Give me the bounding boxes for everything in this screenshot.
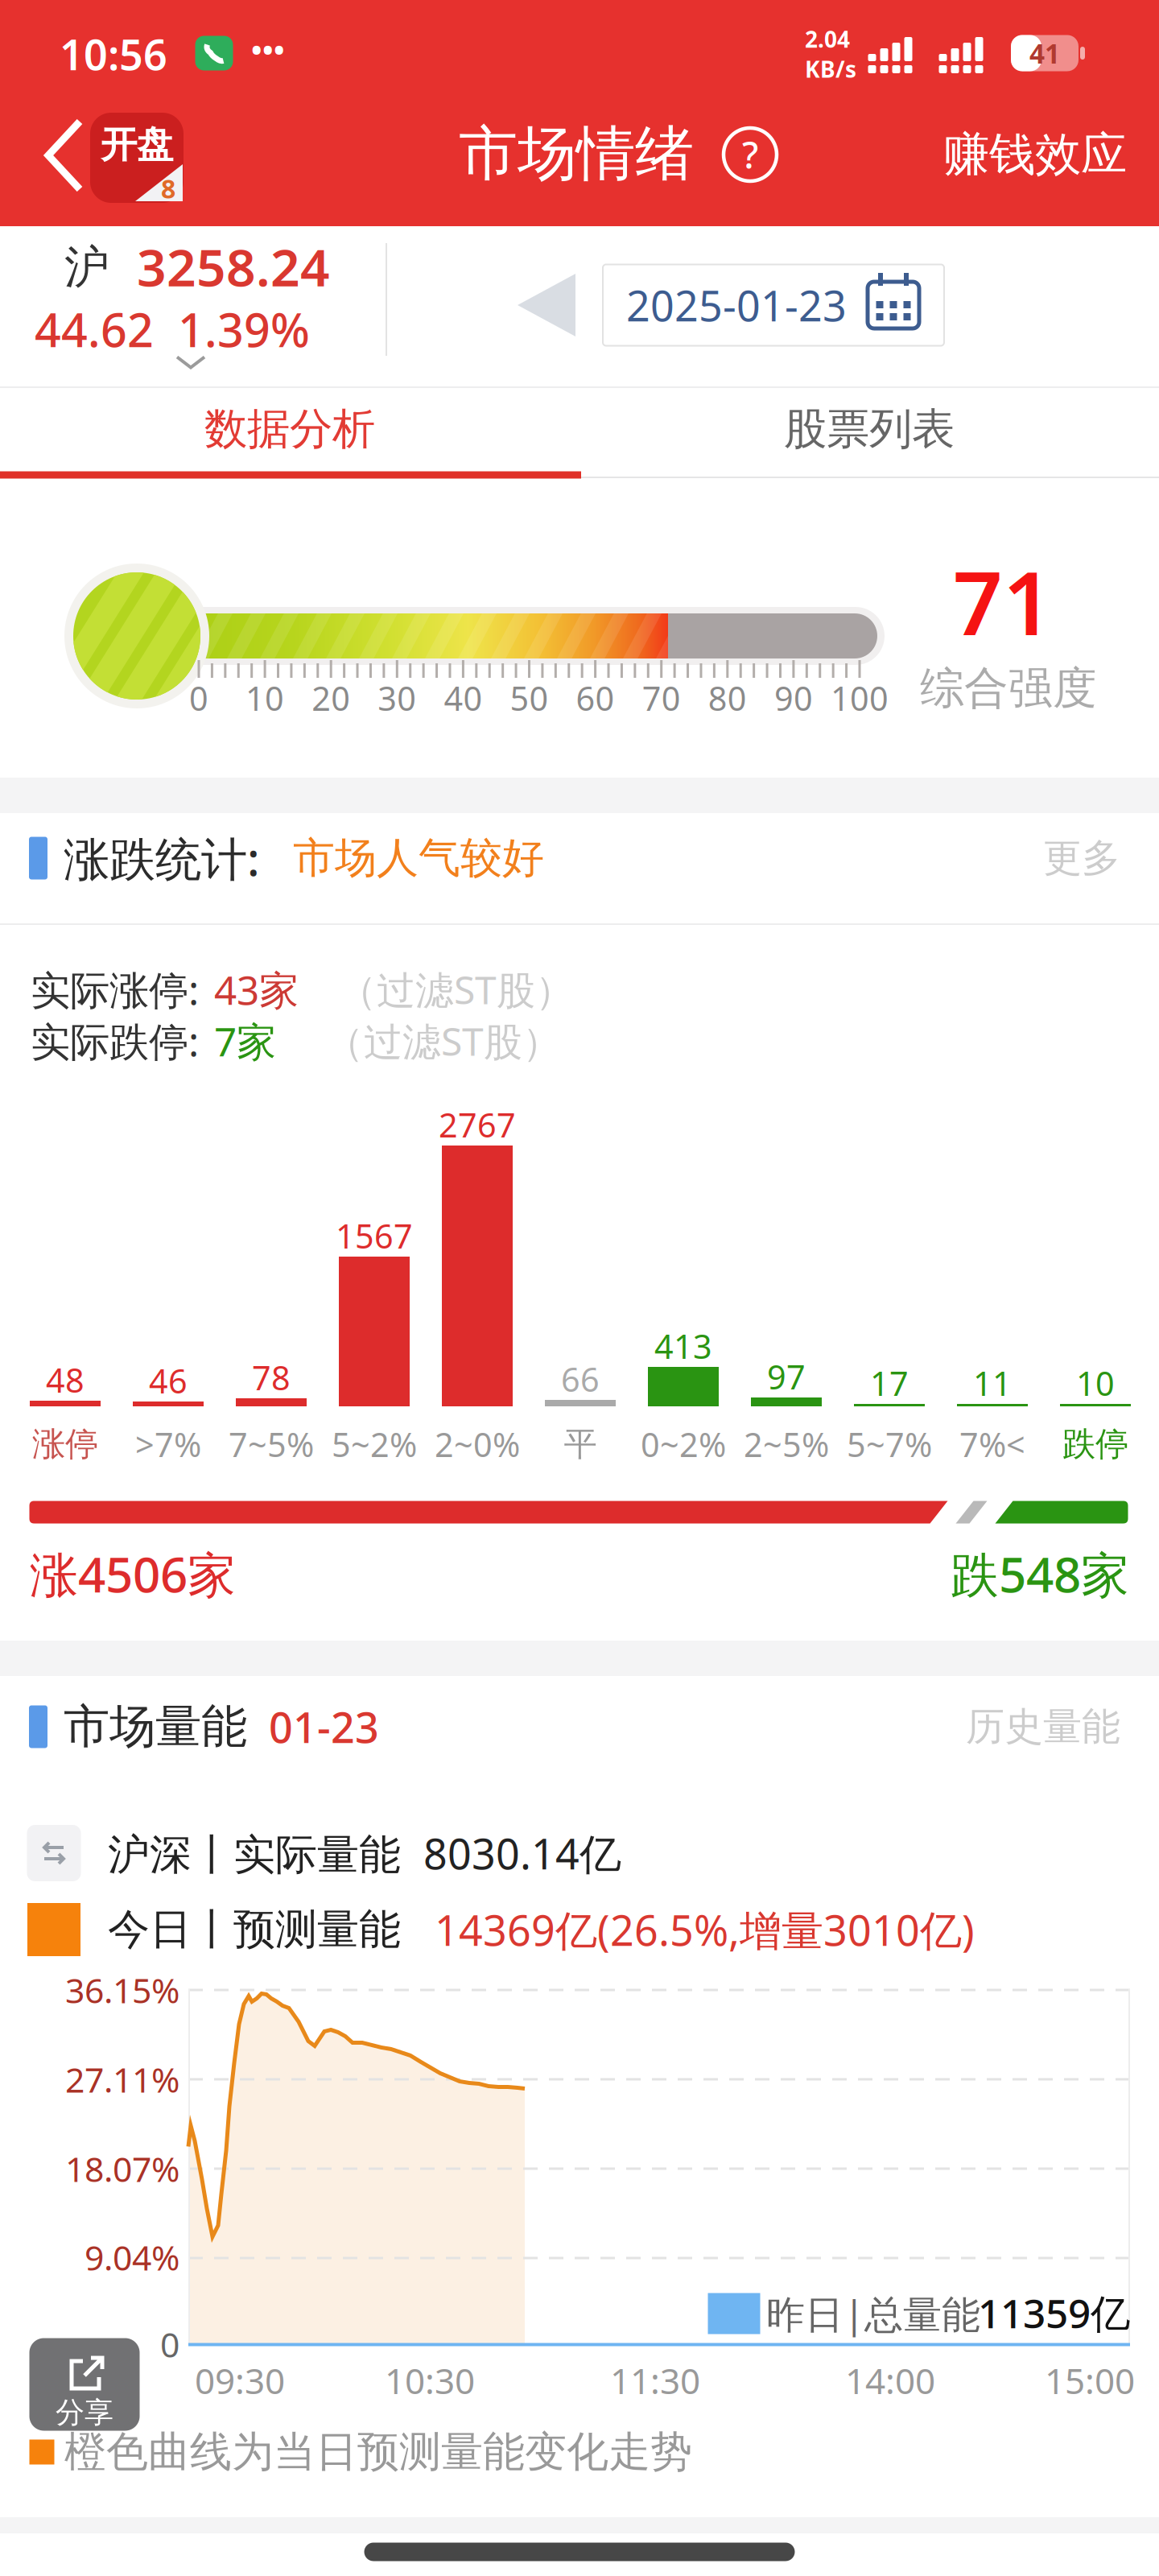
staticText: 跌548家 [951, 1542, 1129, 1606]
staticText: 0~2% [641, 1422, 726, 1466]
staticText: 分享 [56, 2395, 113, 2430]
staticText: 10:56 [60, 26, 167, 82]
staticText: 7家 [214, 1014, 276, 1067]
staticText: 开盘 [101, 123, 173, 167]
staticText: 27.11% [65, 2057, 179, 2102]
staticText: 2~0% [435, 1422, 520, 1466]
staticText: 橙色曲线为当日预测量能变化走势 [64, 2426, 692, 2478]
staticText: 18.07% [65, 2146, 179, 2192]
staticText: 20 [312, 676, 350, 720]
staticText: 36.15% [65, 1967, 179, 2013]
staticText: 5~7% [847, 1422, 932, 1466]
staticText: >7% [135, 1422, 201, 1466]
button[interactable]: 开盘 [90, 113, 184, 203]
staticText: 综合强度 [920, 661, 1097, 715]
staticText: 今日丨预测量能 [108, 1904, 414, 1955]
staticText: 0 [160, 2321, 179, 2367]
staticText: 涨停 [32, 1424, 98, 1465]
staticText: 97 [767, 1354, 806, 1399]
button[interactable]: 分享 [29, 2338, 140, 2431]
staticText: 48 [46, 1358, 85, 1402]
staticText: 5~2% [332, 1422, 417, 1466]
staticText: 市场量能 [64, 1698, 247, 1755]
staticText: 实际涨停: [31, 963, 199, 1016]
staticText: 11359亿 [978, 2286, 1130, 2339]
button[interactable]: 数据分析 [0, 387, 579, 471]
button[interactable]: 2025-01-23 [603, 264, 944, 346]
staticText: 70 [642, 676, 681, 720]
staticText: 市场情绪 [459, 118, 694, 190]
staticText: 1567 [336, 1214, 413, 1258]
staticText: （过滤ST股） [338, 964, 574, 1015]
staticText: 数据分析 [204, 403, 375, 455]
staticText: 71 [953, 544, 1053, 659]
staticText: 60 [576, 676, 615, 720]
staticText: 80 [708, 676, 747, 720]
button[interactable]: 沪 [0, 226, 386, 386]
staticText: 66 [561, 1357, 600, 1401]
staticText: 涨4506家 [30, 1542, 236, 1606]
staticText: 78 [252, 1355, 291, 1399]
staticText: ? [742, 130, 758, 179]
staticText: 2~5% [744, 1422, 829, 1466]
staticText: 2.04 [805, 24, 850, 54]
staticText: 14:00 [845, 2357, 935, 2404]
staticText: 更多 [1043, 834, 1120, 882]
button[interactable] [518, 274, 575, 336]
staticText: 50 [510, 676, 549, 720]
staticText: 10 [1076, 1361, 1115, 1405]
staticText: 赚钱效应 [943, 126, 1127, 183]
staticText: 01-23 [269, 1699, 379, 1755]
staticText: 11:30 [610, 2357, 700, 2404]
staticText: 股票列表 [784, 403, 955, 455]
button[interactable]: 更多 [911, 834, 1120, 882]
staticText: 09:30 [195, 2357, 285, 2404]
staticText: 实际跌停: [31, 1014, 199, 1067]
staticText: 2767 [439, 1103, 516, 1147]
staticText: 2025-01-23 [626, 277, 847, 333]
staticText: 10 [246, 676, 284, 720]
staticText: KB/s [805, 54, 856, 84]
staticText: 沪深丨实际量能 8030.14亿 [108, 1825, 621, 1881]
button[interactable]: 历史量能 [911, 1703, 1120, 1750]
staticText: 平 [564, 1424, 597, 1465]
staticText: 7~5% [229, 1422, 314, 1466]
staticText: 7%< [959, 1422, 1025, 1466]
staticText: 413 [654, 1324, 712, 1368]
staticText: 历史量能 [966, 1703, 1120, 1750]
staticText: 100 [831, 676, 889, 720]
staticText: 46 [149, 1359, 188, 1403]
staticText: 昨日|总量能 [766, 2288, 992, 2339]
staticText: 0 [189, 676, 208, 720]
staticText: 3258.24 [137, 232, 330, 301]
staticText: 30 [378, 676, 416, 720]
staticText: 8 [161, 171, 175, 206]
button[interactable]: 股票列表 [579, 387, 1159, 471]
staticText: 跌停 [1062, 1424, 1128, 1465]
staticText: 沪 [64, 240, 109, 295]
staticText: 40 [444, 676, 482, 720]
staticText: 15:00 [1045, 2357, 1135, 2404]
staticText: 9.04% [85, 2234, 179, 2280]
staticText: 14369亿(26.5%,增量3010亿) [435, 1902, 975, 1957]
staticText: 90 [774, 676, 813, 720]
staticText: 41 [1029, 35, 1060, 71]
button[interactable]: 赚钱效应 [901, 126, 1127, 183]
staticText: 11 [973, 1361, 1012, 1405]
staticText: 10:30 [385, 2357, 475, 2404]
staticText: 涨跌统计: [64, 827, 260, 889]
button[interactable]: ? [724, 128, 777, 181]
button[interactable] [44, 117, 85, 194]
staticText: 市场人气较好 [293, 832, 544, 884]
staticText: 44.62 1.39% [35, 299, 310, 360]
staticText: 17 [870, 1361, 909, 1405]
staticText: ••• [251, 31, 285, 69]
staticText: 43家 [214, 963, 299, 1016]
staticText: （过滤ST股） [325, 1015, 561, 1066]
